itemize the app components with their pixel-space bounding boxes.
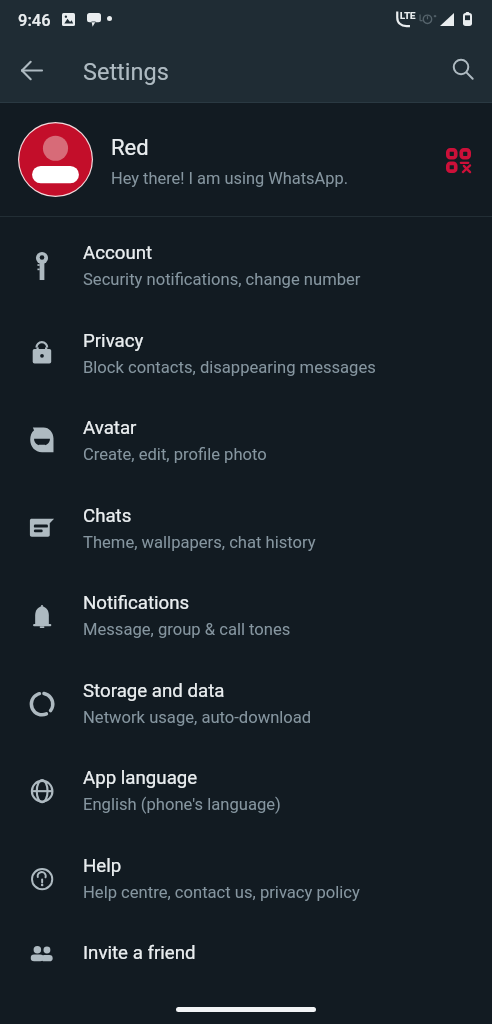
staticText: Theme, wallpapers, chat history [83, 533, 316, 552]
button[interactable]: Invite a friend [0, 923, 492, 999]
button[interactable]: App language [0, 748, 492, 836]
staticText: Chats [83, 505, 132, 527]
staticText: English (phone's language) [83, 795, 281, 814]
staticText: Red [111, 135, 149, 161]
staticText: App language [83, 767, 198, 789]
staticText: Storage and data [83, 680, 225, 702]
staticText: 9:46 [18, 11, 51, 30]
staticText: Help [83, 855, 122, 877]
staticText: Avatar [83, 417, 137, 439]
staticText: Notifications [83, 592, 190, 614]
button[interactable]: Help [0, 836, 492, 924]
staticText: Create, edit, profile photo [83, 445, 267, 464]
button[interactable]: Red [0, 104, 492, 216]
staticText: Hey there! I am using WhatsApp. [111, 169, 348, 188]
staticText: Privacy [83, 330, 144, 352]
staticText: Block contacts, disappearing messages [83, 358, 376, 377]
button[interactable]: Avatar [0, 398, 492, 486]
button[interactable]: Notifications [0, 573, 492, 661]
staticText: Security notifications, change number [83, 270, 361, 289]
button[interactable]: Search [439, 45, 487, 93]
staticText: Settings [83, 58, 169, 86]
button[interactable]: Back [8, 46, 56, 94]
staticText: Network usage, auto-download [83, 708, 312, 727]
staticText: LTE [400, 10, 416, 21]
staticText: Invite a friend [83, 942, 196, 964]
button[interactable]: Privacy [0, 311, 492, 399]
button[interactable]: My QR code [436, 138, 480, 182]
button[interactable]: Account [0, 223, 492, 311]
staticText: Account [83, 242, 153, 264]
button[interactable]: Storage and data [0, 661, 492, 749]
staticText: Message, group & call tones [83, 620, 291, 639]
button[interactable]: Chats [0, 486, 492, 574]
staticText: Help centre, contact us, privacy policy [83, 883, 360, 902]
